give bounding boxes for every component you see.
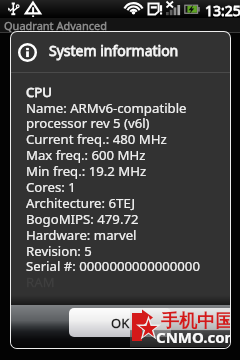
staticText: RAM <box>26 273 55 291</box>
staticText: Max freq.: 600 MHz <box>26 146 146 164</box>
staticText: Name: ARMv6-compatible <box>26 99 187 117</box>
staticText: Min freq.: 19.2 MHz <box>26 162 147 180</box>
staticText: CPU <box>26 83 52 101</box>
staticText: CNMO.com <box>156 327 230 347</box>
staticText: processor rev 5 (v6l) <box>26 114 150 132</box>
staticText: Quadrant Advanced <box>4 18 108 32</box>
staticText: Architecture: 6TEJ <box>26 194 136 212</box>
staticText: 手机中国 <box>161 310 230 333</box>
staticText: Hardware: marvel <box>26 226 137 244</box>
staticText: System information <box>49 41 179 60</box>
staticText: BogoMIPS: 479.72 <box>26 210 139 228</box>
staticText: Current freq.: 480 MHz <box>26 130 167 148</box>
button[interactable]: OK <box>69 308 171 337</box>
staticText: Revision: 5 <box>26 242 92 260</box>
staticText: 13:25 <box>205 1 240 19</box>
staticText: OK <box>111 314 130 332</box>
staticText: Serial #: 0000000000000000 <box>26 257 200 275</box>
staticText: Cores: 1 <box>26 178 76 196</box>
